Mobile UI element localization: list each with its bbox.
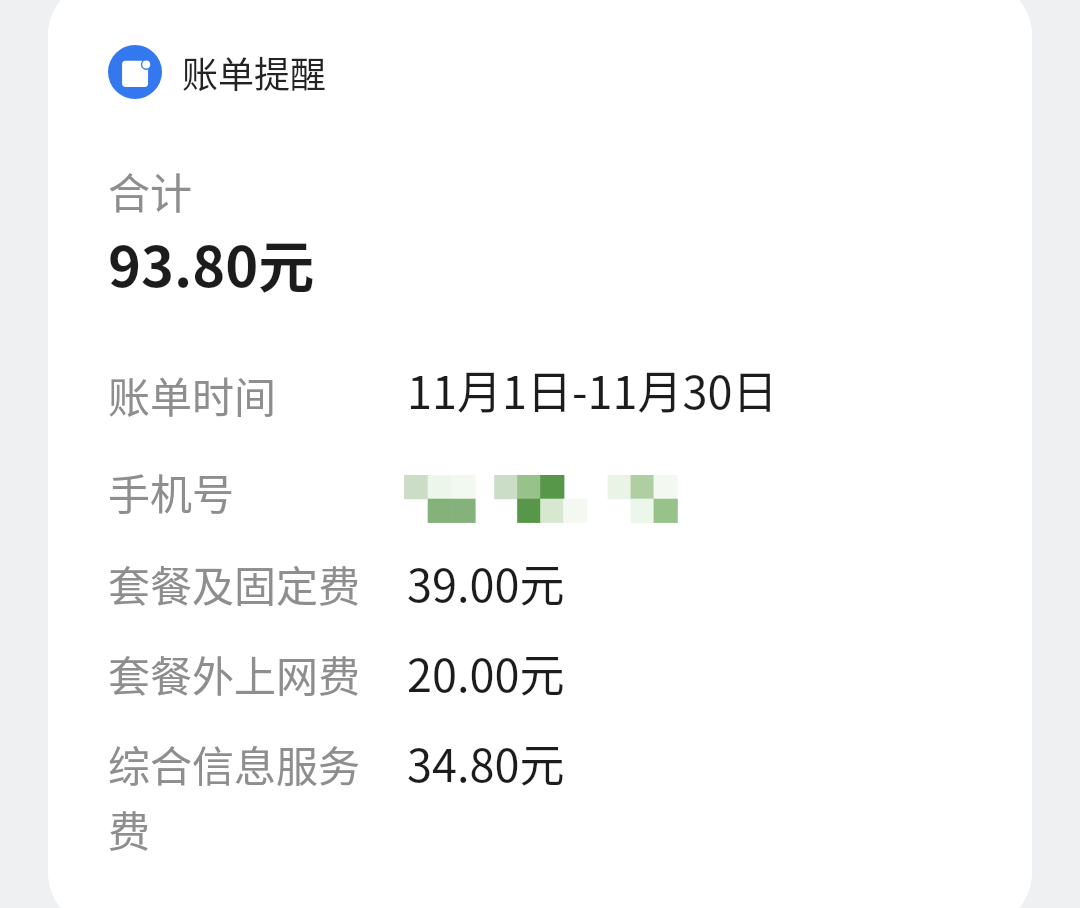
staticText: 20.00元 xyxy=(407,640,565,705)
button[interactable]: 账单提醒服务图标 xyxy=(108,45,327,99)
staticText: 11月1日-11月30日 xyxy=(407,357,778,422)
staticText: 账单时间 xyxy=(108,364,277,425)
staticText: 93.80元 xyxy=(108,222,315,303)
staticText: 39.00元 xyxy=(407,550,565,615)
other: 账单提醒服务图标 xyxy=(108,45,162,99)
staticText: 套餐及固定费 xyxy=(108,553,361,614)
staticText: 综合信息服务费 xyxy=(108,733,370,859)
other: 手机号已隐藏 xyxy=(404,475,694,523)
staticText: 账单提醒 xyxy=(182,46,327,98)
staticText: 套餐外上网费 xyxy=(108,643,361,704)
button[interactable] xyxy=(48,0,1032,908)
staticText: 34.80元 xyxy=(407,730,565,795)
staticText: 手机号 xyxy=(108,461,235,522)
staticText: 合计 xyxy=(108,160,193,221)
